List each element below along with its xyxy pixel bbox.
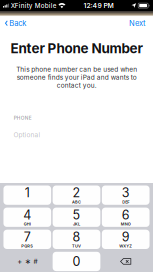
staticText: 8 — [72, 229, 80, 245]
staticText: 6 — [122, 207, 130, 222]
staticText: 5 — [72, 207, 80, 222]
staticText: PQRS — [21, 244, 33, 248]
button[interactable]: Next — [123, 16, 153, 30]
staticText: 7 — [24, 229, 31, 245]
button[interactable]: 9 — [102, 230, 149, 249]
staticText: TUV — [72, 244, 81, 248]
staticText: 0 — [72, 254, 80, 269]
button[interactable]: 0 — [53, 252, 100, 271]
button[interactable]: 8 — [53, 230, 100, 249]
staticText: Optional — [13, 131, 40, 139]
staticText: Enter Phone Number — [10, 40, 142, 56]
staticText: 12:49 PM — [83, 1, 113, 10]
button[interactable]: Delete — [102, 252, 149, 271]
staticText: PHONE — [14, 115, 32, 121]
staticText: ABC — [72, 199, 81, 204]
staticText: 4 — [23, 207, 31, 222]
staticText: JKL — [73, 222, 80, 226]
staticText: # — [33, 257, 37, 265]
staticText: + — [17, 257, 22, 266]
button[interactable]: 5 — [53, 208, 100, 227]
button[interactable]: 1 — [3, 185, 51, 205]
staticText: Next — [129, 19, 145, 28]
staticText: ∗ — [25, 257, 31, 266]
button[interactable]: 3 — [102, 185, 149, 205]
staticText: XFinity Mobile — [11, 2, 57, 9]
staticText: GHI — [24, 222, 31, 226]
staticText: 2 — [72, 185, 80, 200]
staticText: WXYZ — [119, 244, 132, 248]
staticText: 9 — [122, 229, 130, 245]
staticText: 3 — [122, 185, 130, 200]
staticText: DEF — [122, 199, 129, 204]
staticText: This phone number can be used when someo… — [16, 65, 137, 89]
button[interactable]: 4 — [3, 208, 51, 227]
staticText: MNO — [121, 222, 131, 226]
button[interactable]: 6 — [102, 208, 149, 227]
button[interactable]: 2 — [53, 185, 100, 205]
button[interactable]: Back — [0, 16, 32, 30]
staticText: 1 — [25, 185, 30, 200]
button[interactable]: Plus, star, pound — [3, 252, 51, 271]
staticText: Back — [9, 19, 26, 28]
button[interactable]: 7 — [3, 230, 51, 249]
